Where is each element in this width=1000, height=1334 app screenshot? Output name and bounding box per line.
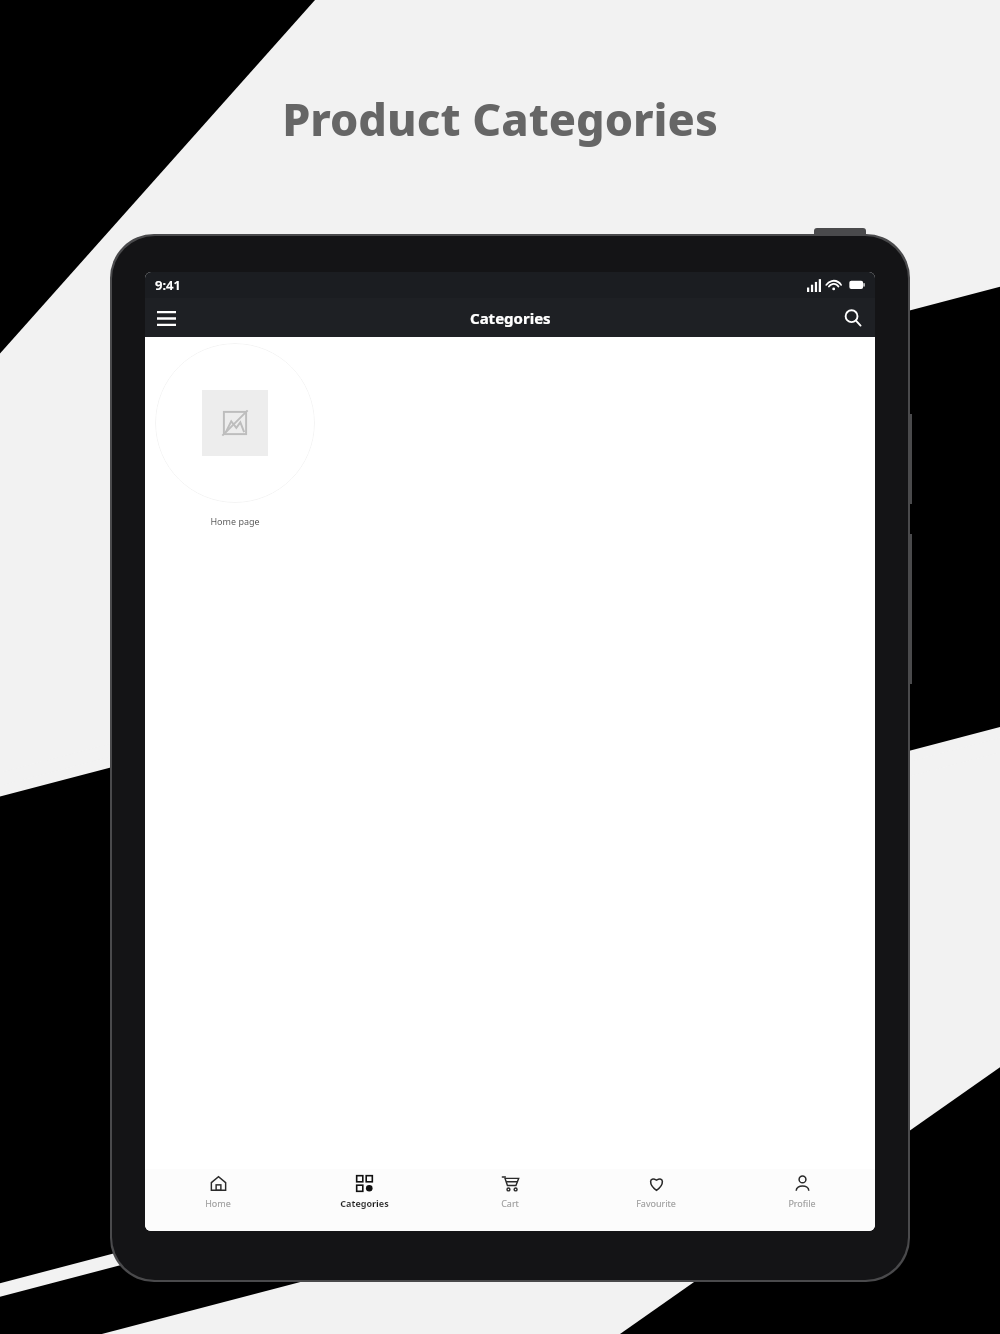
staticText: Cart (501, 1197, 519, 1209)
button[interactable]: Favourite (583, 1175, 729, 1231)
button[interactable]: Profile (729, 1175, 875, 1231)
button[interactable]: Cart (437, 1175, 583, 1231)
staticText: Product Categories (0, 88, 1000, 149)
button[interactable]: Categories (291, 1175, 437, 1231)
button[interactable]: Search (836, 301, 870, 335)
button[interactable]: Home (145, 1175, 291, 1231)
staticText: Favourite (636, 1197, 676, 1209)
staticText: Home page (210, 515, 260, 527)
staticText: Profile (788, 1197, 816, 1209)
button[interactable]: Home page (149, 343, 321, 527)
staticText: 9:41 (155, 276, 181, 294)
button[interactable]: Menu (149, 301, 183, 335)
staticText: Categories (340, 1197, 389, 1209)
staticText: Categories (470, 308, 551, 328)
staticText: Home (205, 1197, 231, 1209)
